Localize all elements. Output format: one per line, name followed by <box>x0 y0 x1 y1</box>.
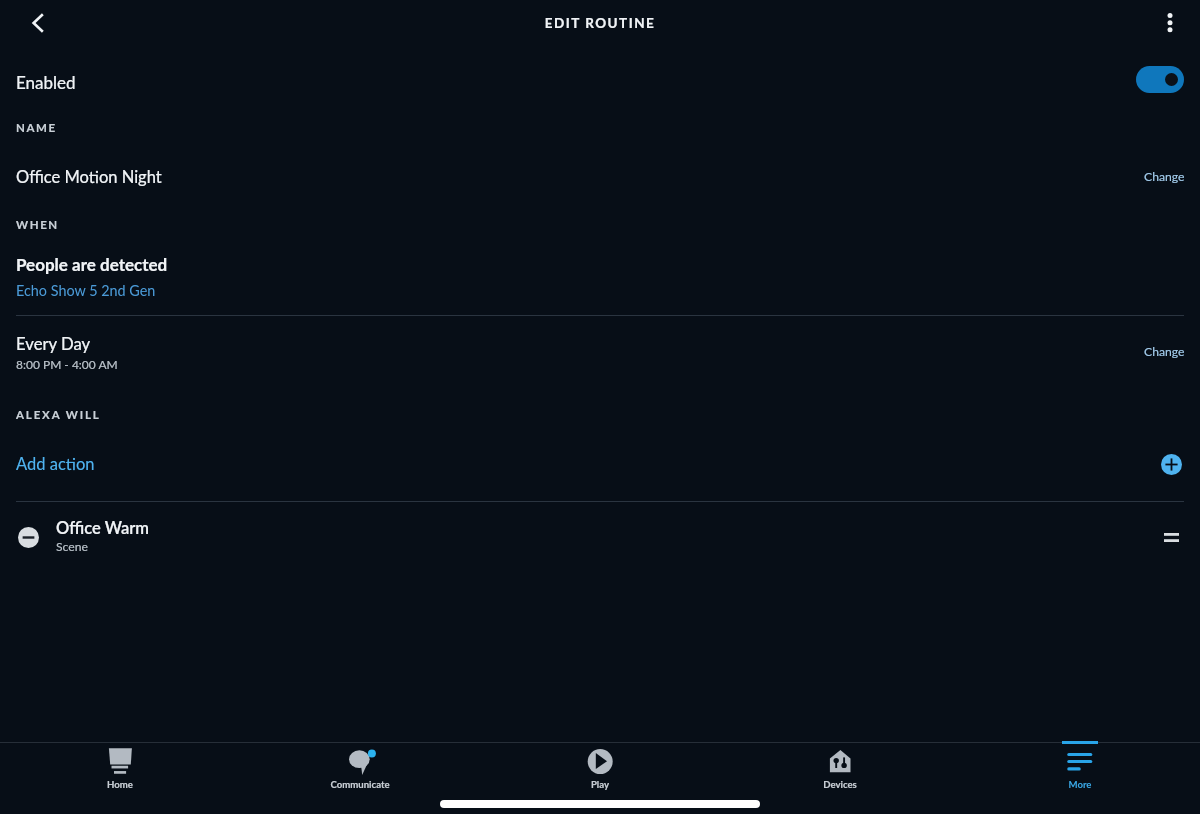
button[interactable]: Enabled toggle <box>1136 66 1184 93</box>
button[interactable] <box>0 56 1200 104</box>
staticText: Scene <box>56 539 88 554</box>
button[interactable]: Remove action <box>18 527 39 548</box>
staticText: Home <box>0 779 240 791</box>
other: Reorder <box>1164 531 1179 543</box>
button[interactable] <box>0 155 1200 199</box>
staticText: ALEXA WILL <box>16 408 101 422</box>
button[interactable]: More options <box>1145 0 1195 46</box>
staticText: NAME <box>16 121 57 135</box>
staticText: Change <box>1144 344 1185 359</box>
staticText: Change <box>1144 169 1185 184</box>
button[interactable]: More <box>960 742 1200 794</box>
button[interactable] <box>0 246 1200 304</box>
staticText: EDIT ROUTINE <box>0 15 1200 31</box>
button[interactable]: Back <box>8 0 68 46</box>
button[interactable]: Communicate <box>240 742 480 794</box>
staticText: Enabled <box>16 72 76 92</box>
button[interactable] <box>0 326 1200 382</box>
button[interactable]: Play <box>480 742 720 794</box>
button[interactable]: Devices <box>720 742 960 794</box>
button[interactable]: Add action <box>1161 454 1182 475</box>
staticText: Communicate <box>240 779 480 791</box>
staticText: WHEN <box>16 218 59 232</box>
staticText: People are detected <box>16 254 168 274</box>
staticText: 8:00 PM - 4:00 AM <box>16 357 118 371</box>
button[interactable] <box>0 442 1200 488</box>
staticText: Echo Show 5 2nd Gen <box>16 282 156 299</box>
staticText: More <box>960 779 1200 791</box>
button[interactable]: Home <box>0 742 240 794</box>
staticText: Add action <box>16 454 95 474</box>
button[interactable] <box>0 510 1200 566</box>
staticText: Play <box>480 779 720 791</box>
staticText: Devices <box>720 779 960 791</box>
staticText: Office Motion Night <box>16 167 162 187</box>
staticText: Every Day <box>16 334 91 354</box>
staticText: Office Warm <box>56 518 149 538</box>
